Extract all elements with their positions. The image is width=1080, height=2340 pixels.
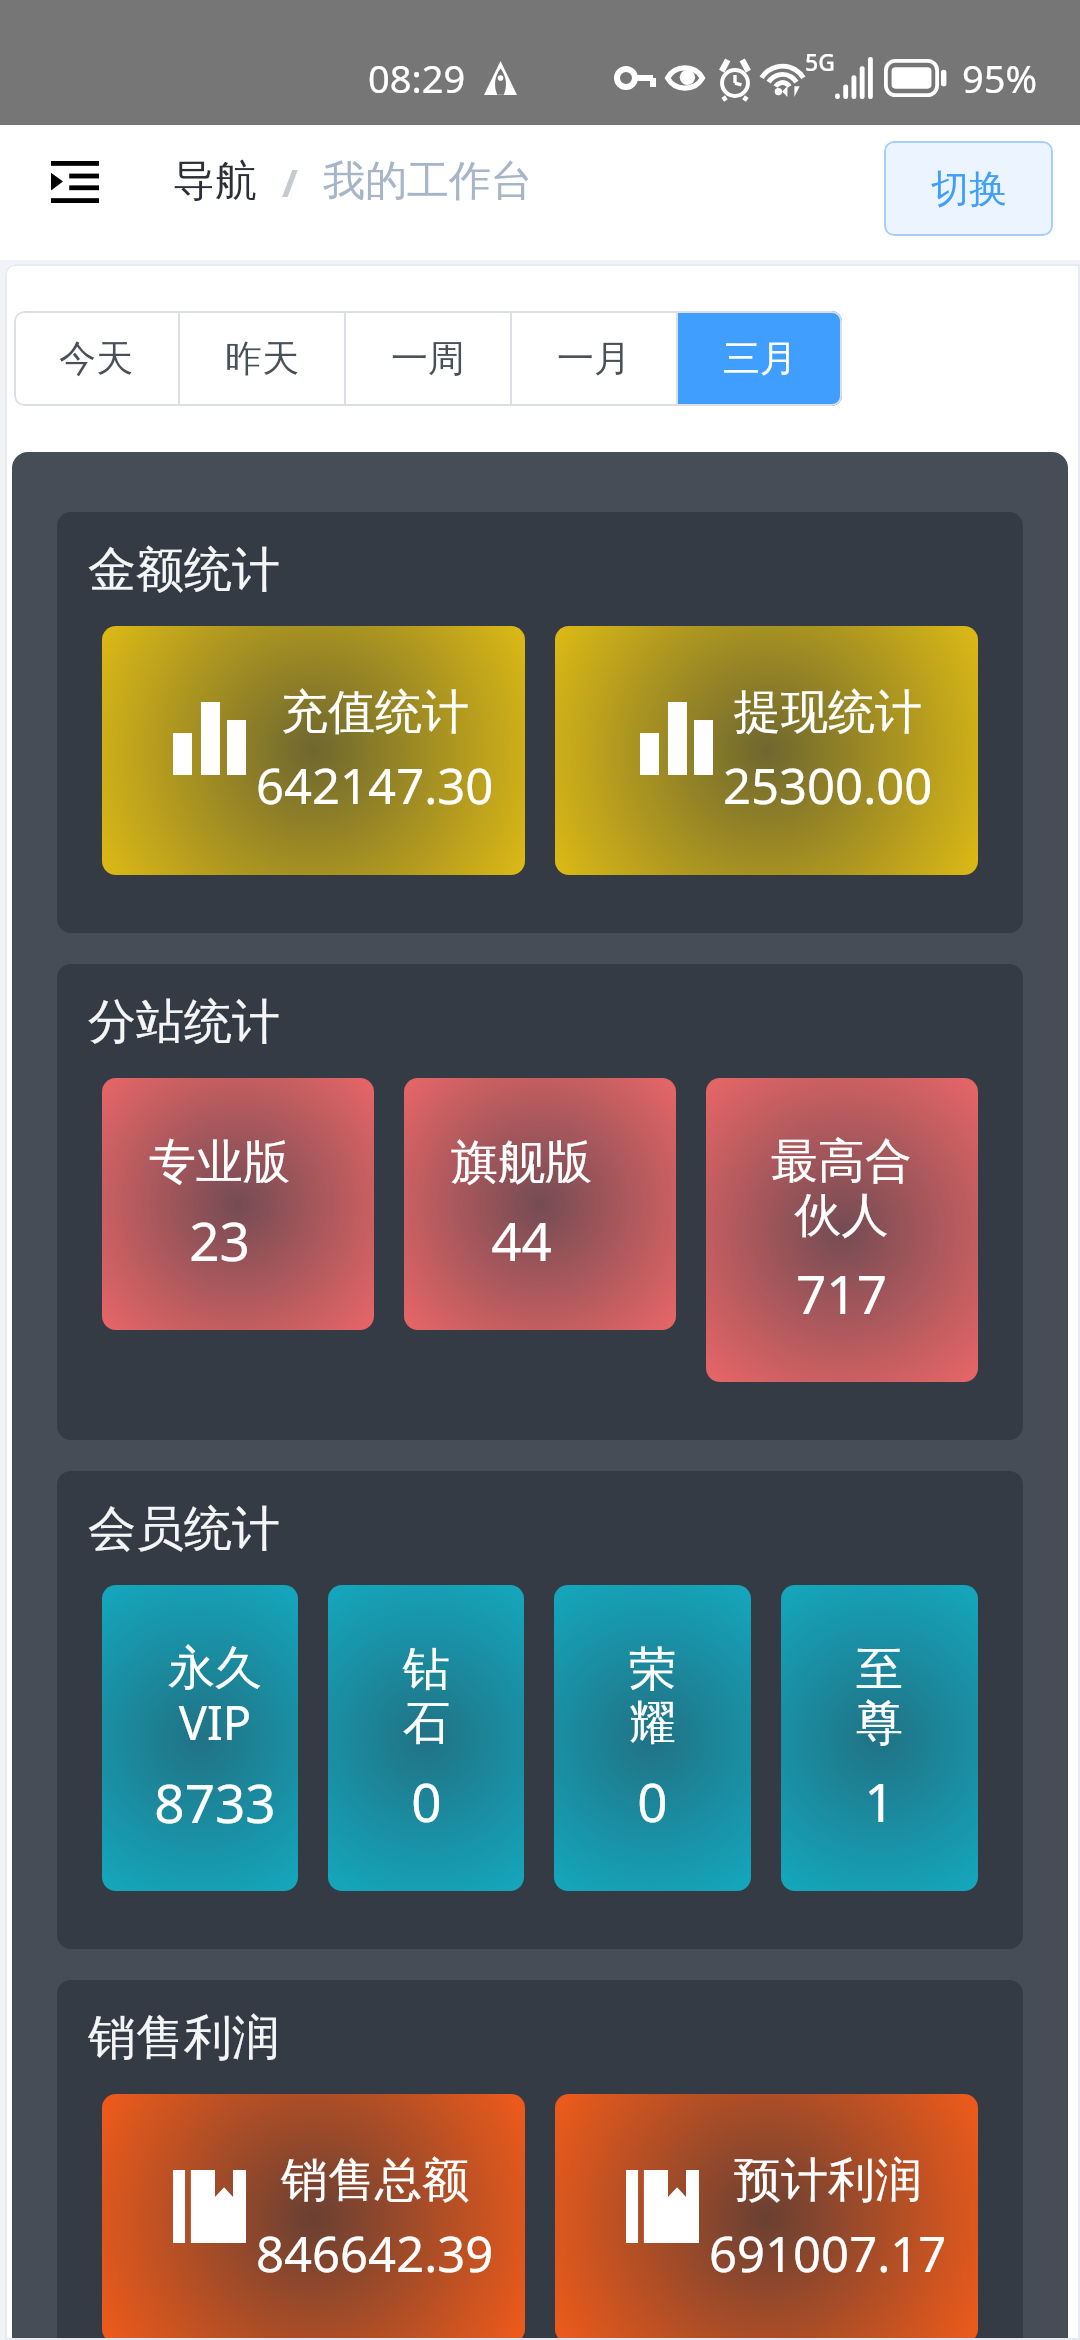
button[interactable]: 昨天 [180, 311, 344, 406]
staticText: 分站统计 [88, 992, 280, 1052]
staticText: 充值统计 [281, 683, 469, 742]
staticText: 旗舰版 [451, 1133, 592, 1192]
staticText: 1 [864, 1765, 895, 1837]
staticText: 提现统计 [734, 683, 922, 742]
staticText: 至 尊 [856, 1640, 903, 1753]
staticText: 销售总额 [281, 2151, 469, 2210]
button[interactable]: 专业版 [102, 1078, 374, 1330]
staticText: 0 [637, 1765, 668, 1837]
button[interactable]: 荣 耀 [554, 1585, 751, 1891]
button[interactable]: 旗舰版 [404, 1078, 676, 1330]
staticText: 691007.17 [709, 2220, 947, 2287]
button[interactable]: 充值统计 [102, 626, 525, 875]
staticText: 一月 [557, 335, 631, 382]
staticText: 切换 [931, 165, 1007, 213]
staticText: 专业版 [149, 1133, 290, 1192]
staticText: 717 [796, 1257, 887, 1329]
button[interactable]: Menu [39, 146, 111, 218]
staticText: 今天 [59, 335, 133, 382]
staticText: 8733 [154, 1766, 276, 1838]
staticText: 钻 石 [403, 1640, 450, 1753]
button[interactable]: 永久 VIP [102, 1585, 298, 1891]
staticText: 昨天 [225, 335, 299, 382]
staticText: 08:29 [368, 52, 466, 104]
staticText: 846642.39 [256, 2220, 494, 2287]
staticText: 我的工作台 [323, 155, 533, 208]
staticText: 5G [805, 46, 835, 77]
staticText: 642147.30 [256, 752, 494, 819]
button[interactable]: 预计利润 [555, 2094, 978, 2340]
staticText: 会员统计 [88, 1499, 280, 1559]
staticText: 三月 [723, 335, 797, 382]
staticText: 25300.00 [723, 752, 933, 819]
staticText: 最高合 伙人 [771, 1132, 912, 1245]
button[interactable]: 今天 [14, 311, 178, 406]
staticText: 44 [491, 1204, 552, 1276]
staticText: 荣 耀 [629, 1640, 676, 1753]
button[interactable]: 最高合 伙人 [706, 1078, 978, 1382]
button[interactable]: 一月 [512, 311, 676, 406]
staticText: 销售利润 [88, 2008, 280, 2068]
button[interactable]: 钻 石 [328, 1585, 524, 1891]
staticText: 95% [962, 52, 1038, 104]
button[interactable]: 三月 [678, 311, 842, 406]
button[interactable]: 销售总额 [102, 2094, 525, 2340]
staticText: / [282, 156, 298, 208]
button[interactable]: 一周 [346, 311, 510, 406]
staticText: 永久 VIP [168, 1639, 262, 1754]
button[interactable]: 切换 [884, 141, 1053, 236]
staticText: 23 [189, 1204, 250, 1276]
staticText: 0 [411, 1765, 442, 1837]
staticText: 金额统计 [88, 540, 280, 600]
button[interactable]: 提现统计 [555, 626, 978, 875]
staticText: 一周 [391, 335, 465, 382]
button[interactable]: 至 尊 [781, 1585, 978, 1891]
staticText: 导航 [173, 155, 257, 208]
staticText: 预计利润 [734, 2151, 922, 2210]
